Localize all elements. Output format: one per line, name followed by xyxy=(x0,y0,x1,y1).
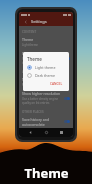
staticText: Settings xyxy=(31,19,47,24)
button[interactable]: Dark theme xyxy=(27,73,65,78)
button[interactable]: Light theme xyxy=(27,65,65,70)
staticText: CANCEL xyxy=(50,82,63,86)
staticText: Text size xyxy=(22,77,36,82)
staticText: CONTENT xyxy=(22,30,37,34)
button[interactable]: Save history and autocomplete xyxy=(64,120,70,123)
staticText: Light theme xyxy=(35,65,56,70)
staticText: Show higher resolution xyxy=(22,91,61,96)
button[interactable]: Back xyxy=(22,18,29,25)
button[interactable]: CANCEL xyxy=(48,81,65,87)
button[interactable]: Text size xyxy=(22,75,70,89)
staticText: Theme xyxy=(27,56,42,62)
staticText: OTHER PLACES xyxy=(22,110,44,114)
staticText: Dark theme xyxy=(35,73,55,78)
staticText: Show suggestions xyxy=(22,51,52,56)
staticText: Light theme xyxy=(22,43,38,47)
staticText: Use a better density engine quality on l… xyxy=(22,97,62,105)
staticText: Theme xyxy=(22,37,34,42)
button[interactable]: Theme xyxy=(22,35,70,49)
staticText: Show suggestions when you type xyxy=(22,57,62,65)
button[interactable]: Back xyxy=(27,129,34,136)
button[interactable]: Home xyxy=(43,129,50,136)
button[interactable]: Show higher resolution xyxy=(64,97,70,100)
button[interactable]: Show suggestions xyxy=(64,57,70,60)
button[interactable]: Recent apps xyxy=(58,129,65,136)
button[interactable]: Save history and autocomplete xyxy=(22,115,70,128)
staticText: Save history and autocomplete xyxy=(22,117,62,126)
staticText: Theme xyxy=(24,164,69,182)
button[interactable]: Show higher resolution xyxy=(22,89,70,107)
button[interactable]: Show suggestions xyxy=(22,49,70,67)
staticText: APPEARANCE xyxy=(22,70,42,74)
staticText: Medium xyxy=(22,83,33,87)
